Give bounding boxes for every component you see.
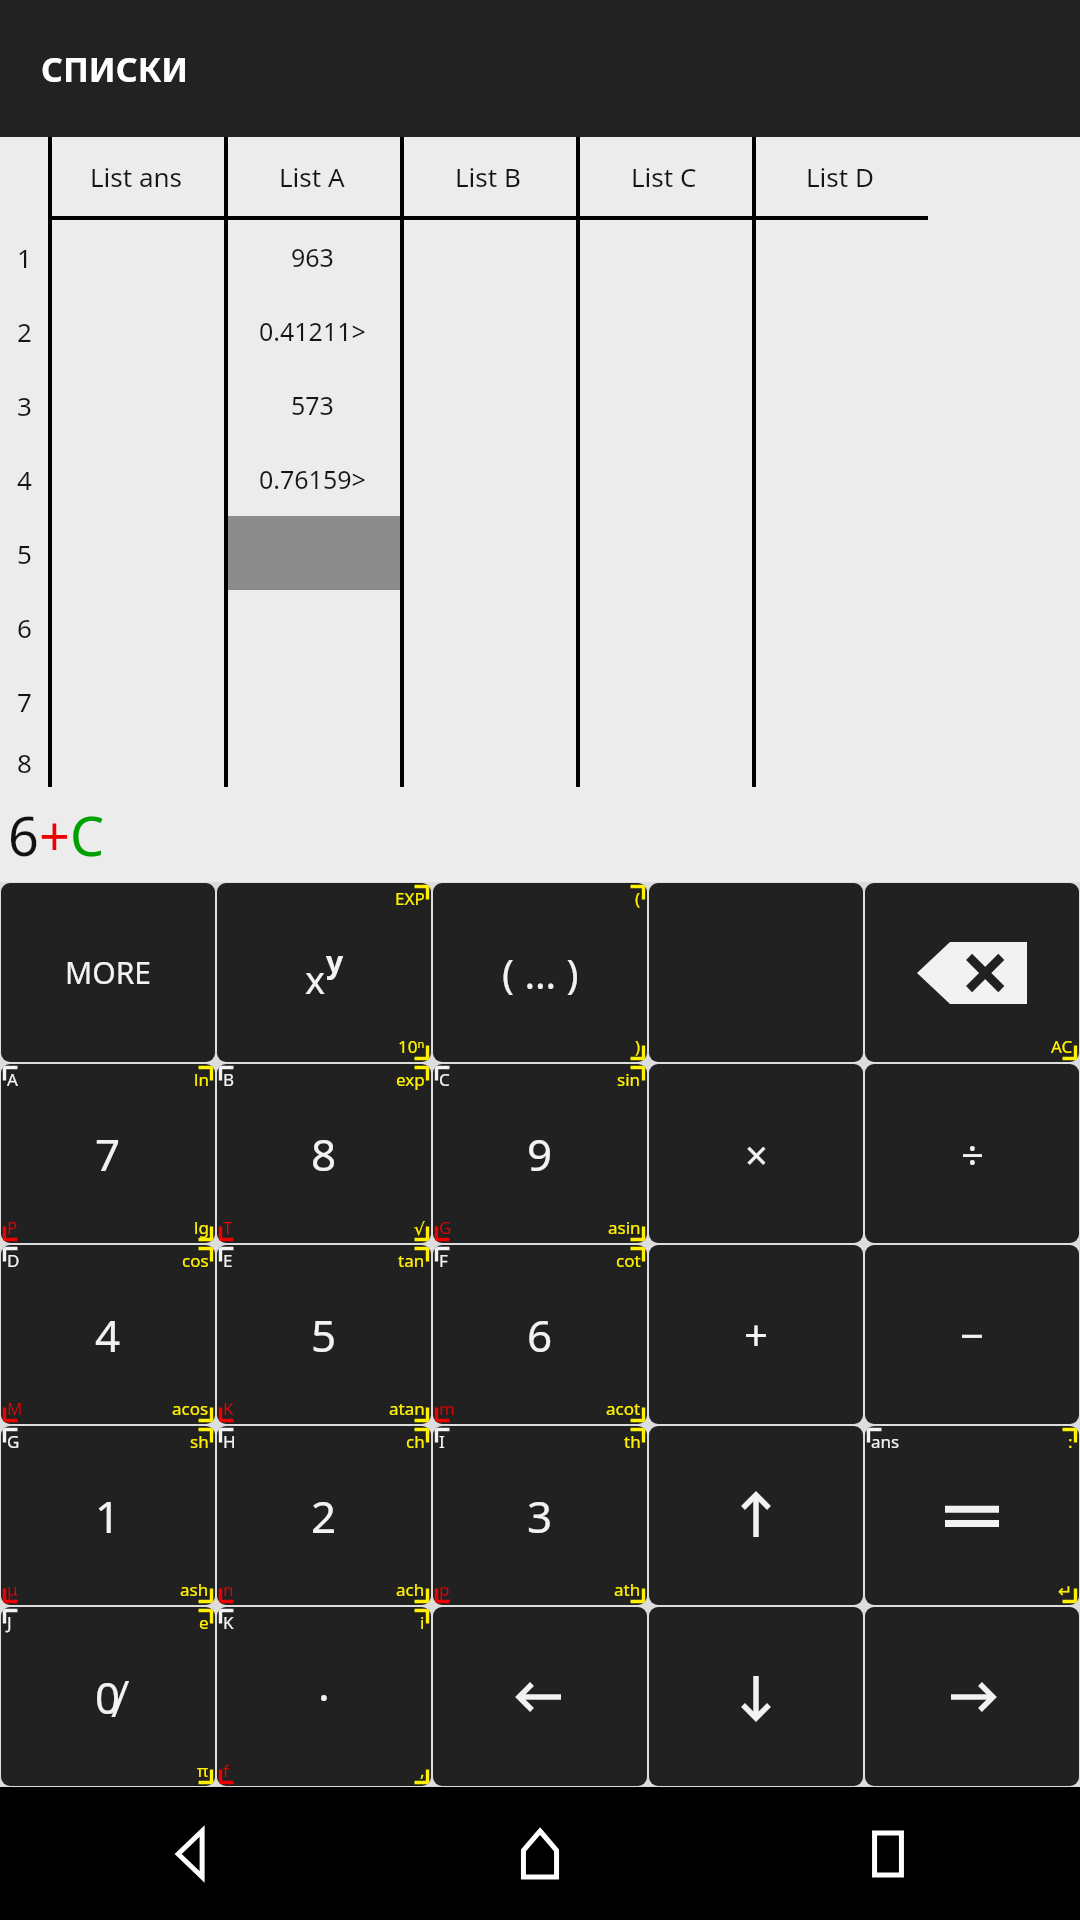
staticText: List D bbox=[806, 159, 874, 194]
staticText: · bbox=[318, 1667, 330, 1727]
staticText: 0.76159> bbox=[259, 462, 366, 496]
staticText: AC bbox=[1051, 1035, 1073, 1058]
staticText: × bbox=[745, 1127, 768, 1181]
staticText: ans bbox=[871, 1430, 900, 1453]
staticText: e bbox=[199, 1611, 209, 1634]
button[interactable]: Decimal point bbox=[217, 1607, 431, 1786]
staticText: СПИСКИ bbox=[41, 46, 189, 92]
button[interactable]: Divide bbox=[865, 1064, 1079, 1243]
staticText: K bbox=[223, 1397, 234, 1420]
button[interactable]: 0 bbox=[1, 1607, 215, 1786]
button[interactable]: Blank bbox=[649, 883, 863, 1062]
staticText: 0.41211> bbox=[259, 314, 366, 348]
staticText: ) bbox=[635, 1035, 641, 1058]
button[interactable]: 9 bbox=[433, 1064, 647, 1243]
staticText: − bbox=[960, 1306, 985, 1363]
staticText: T bbox=[223, 1216, 233, 1239]
staticText: B bbox=[223, 1068, 235, 1091]
staticText: ↵ bbox=[1058, 1581, 1073, 1601]
staticText: 6 bbox=[8, 798, 39, 872]
staticText: J bbox=[7, 1611, 12, 1634]
staticText: I bbox=[439, 1430, 445, 1453]
button[interactable]: 6 bbox=[433, 1245, 647, 1424]
staticText: A bbox=[7, 1068, 18, 1091]
button[interactable]: Down bbox=[649, 1607, 863, 1786]
staticText: 963 bbox=[291, 240, 334, 274]
staticText: th bbox=[624, 1430, 641, 1453]
button[interactable]: Minus bbox=[865, 1245, 1079, 1424]
staticText: K bbox=[223, 1611, 234, 1634]
button[interactable]: Parentheses bbox=[433, 883, 647, 1062]
staticText: asin bbox=[608, 1216, 641, 1239]
staticText: MORE bbox=[65, 952, 151, 993]
button[interactable]: Backspace bbox=[865, 883, 1079, 1062]
button[interactable]: Back bbox=[150, 1812, 234, 1896]
staticText: List A bbox=[279, 159, 345, 194]
button[interactable]: Up bbox=[649, 1426, 863, 1605]
staticText: 8 bbox=[17, 745, 32, 780]
staticText: E bbox=[223, 1249, 233, 1272]
staticText: atan bbox=[389, 1397, 425, 1420]
staticText: C bbox=[439, 1068, 450, 1091]
staticText: √ bbox=[414, 1219, 425, 1239]
staticText: i bbox=[420, 1611, 425, 1634]
staticText: P bbox=[7, 1216, 18, 1239]
staticText: ( bbox=[635, 887, 641, 910]
staticText: ash bbox=[180, 1578, 209, 1601]
staticText: y bbox=[326, 941, 344, 982]
staticText: 2 bbox=[311, 1486, 337, 1546]
staticText: ln bbox=[194, 1068, 209, 1091]
staticText: x bbox=[305, 953, 326, 1005]
staticText: f bbox=[223, 1759, 229, 1782]
staticText: 8 bbox=[311, 1124, 337, 1184]
staticText: 5 bbox=[17, 536, 32, 571]
staticText: List ans bbox=[90, 159, 183, 194]
button[interactable]: Home bbox=[498, 1812, 582, 1896]
staticText: m bbox=[439, 1397, 455, 1420]
button[interactable]: Equals bbox=[865, 1426, 1079, 1605]
staticText: 0̸ bbox=[95, 1667, 121, 1727]
staticText: 7 bbox=[17, 684, 32, 719]
staticText: ch bbox=[406, 1430, 425, 1453]
staticText: 6 bbox=[17, 610, 32, 645]
button[interactable]: Right bbox=[865, 1607, 1079, 1786]
staticText: 7 bbox=[95, 1124, 121, 1184]
staticText: EXP bbox=[395, 887, 425, 910]
button[interactable]: Plus bbox=[649, 1245, 863, 1424]
staticText: ach bbox=[396, 1578, 425, 1601]
staticText: 3 bbox=[17, 388, 32, 423]
staticText: G bbox=[439, 1216, 452, 1239]
button[interactable]: 4 bbox=[1, 1245, 215, 1424]
button[interactable]: Left bbox=[433, 1607, 647, 1786]
staticText: 1 bbox=[95, 1486, 121, 1546]
button[interactable]: 7 bbox=[1, 1064, 215, 1243]
button[interactable]: Power bbox=[217, 883, 431, 1062]
staticText: 1 bbox=[17, 240, 32, 275]
staticText: p bbox=[439, 1578, 450, 1601]
staticText: List C bbox=[631, 159, 697, 194]
button[interactable]: 3 bbox=[433, 1426, 647, 1605]
staticText: tan bbox=[398, 1249, 425, 1272]
button[interactable]: 1 bbox=[1, 1426, 215, 1605]
staticText: 10ⁿ bbox=[398, 1035, 425, 1058]
button[interactable]: 2 bbox=[217, 1426, 431, 1605]
staticText: cot bbox=[616, 1249, 641, 1272]
staticText: C bbox=[70, 798, 105, 872]
button[interactable]: 8 bbox=[217, 1064, 431, 1243]
button[interactable]: Recents bbox=[846, 1812, 930, 1896]
staticText: π bbox=[197, 1759, 209, 1782]
staticText: ( … ) bbox=[502, 946, 579, 1000]
button[interactable]: More bbox=[1, 883, 215, 1062]
staticText: , bbox=[420, 1759, 425, 1782]
staticText: + bbox=[744, 1306, 769, 1363]
button[interactable]: Multiply bbox=[649, 1064, 863, 1243]
staticText: F bbox=[439, 1249, 448, 1272]
staticText: μ bbox=[7, 1578, 18, 1601]
staticText: cos bbox=[182, 1249, 209, 1272]
staticText: lg bbox=[194, 1216, 209, 1239]
staticText: exp bbox=[396, 1068, 425, 1091]
button[interactable]: 5 bbox=[217, 1245, 431, 1424]
staticText: ÷ bbox=[961, 1127, 984, 1181]
staticText: G bbox=[7, 1430, 20, 1453]
staticText: 9 bbox=[527, 1124, 553, 1184]
